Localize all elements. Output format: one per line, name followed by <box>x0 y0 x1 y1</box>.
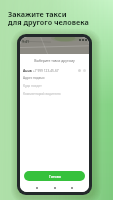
staticText: 9:41 <box>22 39 30 44</box>
staticText: Готово <box>49 174 61 179</box>
staticText: Комментарий водителю <box>23 92 61 96</box>
button[interactable]: Готово <box>24 171 85 181</box>
staticText: Куда поедет <box>23 84 42 88</box>
button[interactable]: Contacts <box>78 69 81 72</box>
staticText: Адрес подачи <box>23 76 45 80</box>
button[interactable]: Clear <box>83 69 86 72</box>
staticText: Закажите такси <box>8 9 67 19</box>
staticText: для другого человека <box>8 17 89 27</box>
staticText: Анна <box>23 68 32 73</box>
staticText: Выберите такси другому <box>20 58 89 63</box>
staticText: +7 999 123-45-67 <box>33 69 59 73</box>
